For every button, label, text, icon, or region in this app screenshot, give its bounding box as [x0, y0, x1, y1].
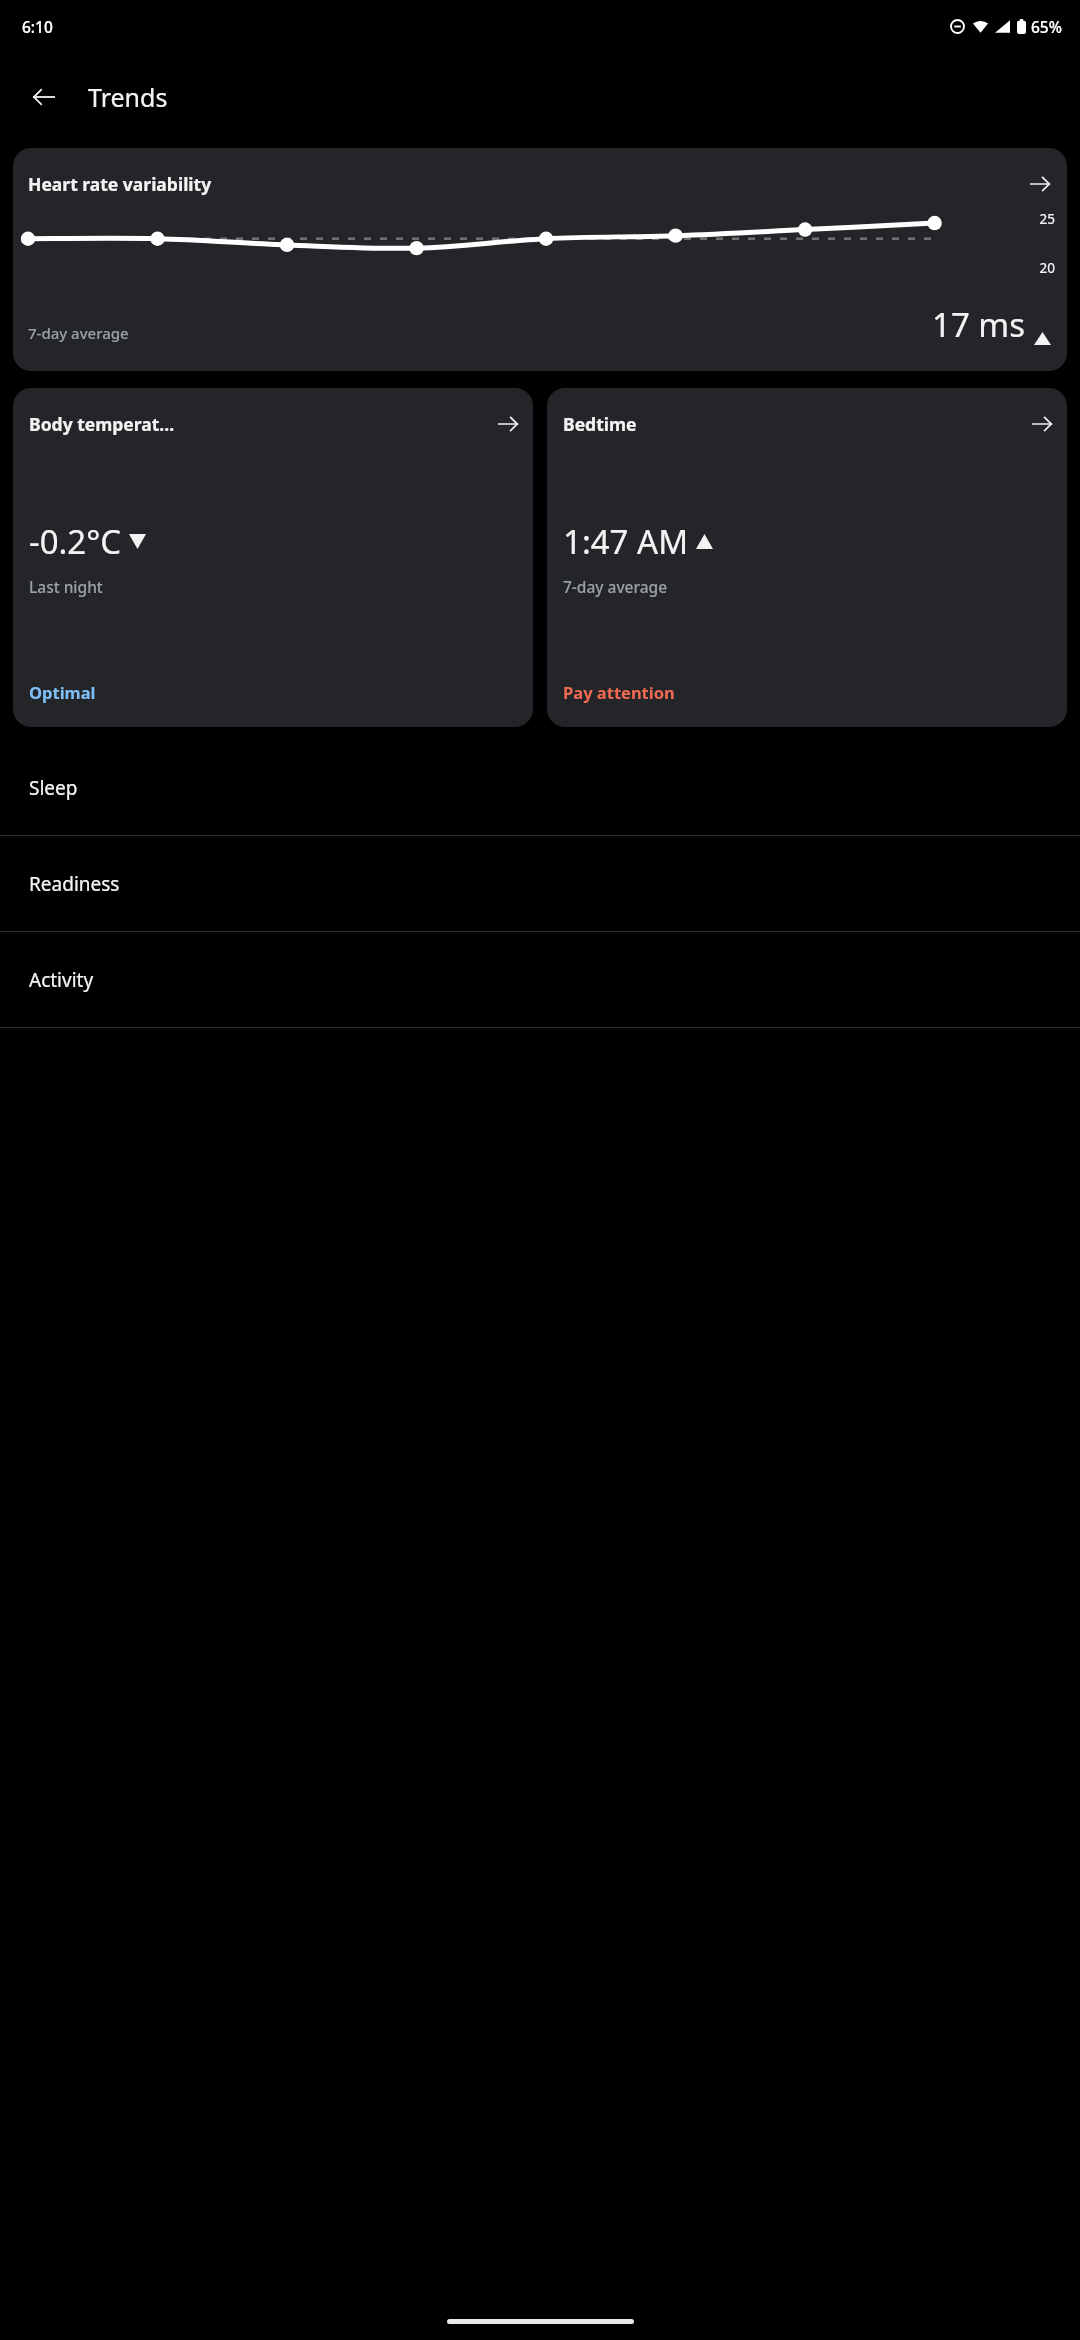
- button[interactable]: Back: [20, 73, 68, 121]
- staticText: Pay attention: [563, 681, 675, 703]
- staticText: Readiness: [29, 871, 120, 897]
- button[interactable]: Activity: [0, 932, 1080, 1028]
- staticText: Activity: [29, 967, 94, 993]
- staticText: Last night: [29, 576, 103, 597]
- button[interactable]: Bedtime: [547, 388, 1067, 727]
- other: Open Body temperat...: [497, 413, 519, 435]
- staticText: Optimal: [29, 681, 96, 703]
- button[interactable]: Readiness: [0, 836, 1080, 932]
- staticText: 7-day average: [563, 576, 668, 597]
- staticText: Bedtime: [563, 412, 637, 436]
- staticText: 20: [13, 259, 1055, 277]
- button[interactable]: Sleep: [0, 740, 1080, 836]
- staticText: 65%: [1031, 16, 1062, 37]
- staticText: -0.2°C: [29, 519, 122, 564]
- staticText: 7-day average: [28, 323, 129, 343]
- staticText: Trends: [88, 80, 168, 114]
- staticText: Sleep: [29, 775, 78, 801]
- button[interactable]: Body temperat...: [13, 388, 533, 727]
- other: Open heart rate variability: [1029, 173, 1051, 195]
- other: Open Bedtime: [1031, 413, 1053, 435]
- staticText: Body temperat...: [29, 412, 175, 436]
- staticText: 6:10: [22, 16, 53, 37]
- button[interactable]: Heart rate variability: [13, 148, 1067, 371]
- staticText: 17 ms: [932, 302, 1025, 347]
- staticText: 25: [13, 210, 1055, 228]
- staticText: Heart rate variability: [28, 172, 212, 196]
- staticText: 1:47 AM: [563, 519, 689, 564]
